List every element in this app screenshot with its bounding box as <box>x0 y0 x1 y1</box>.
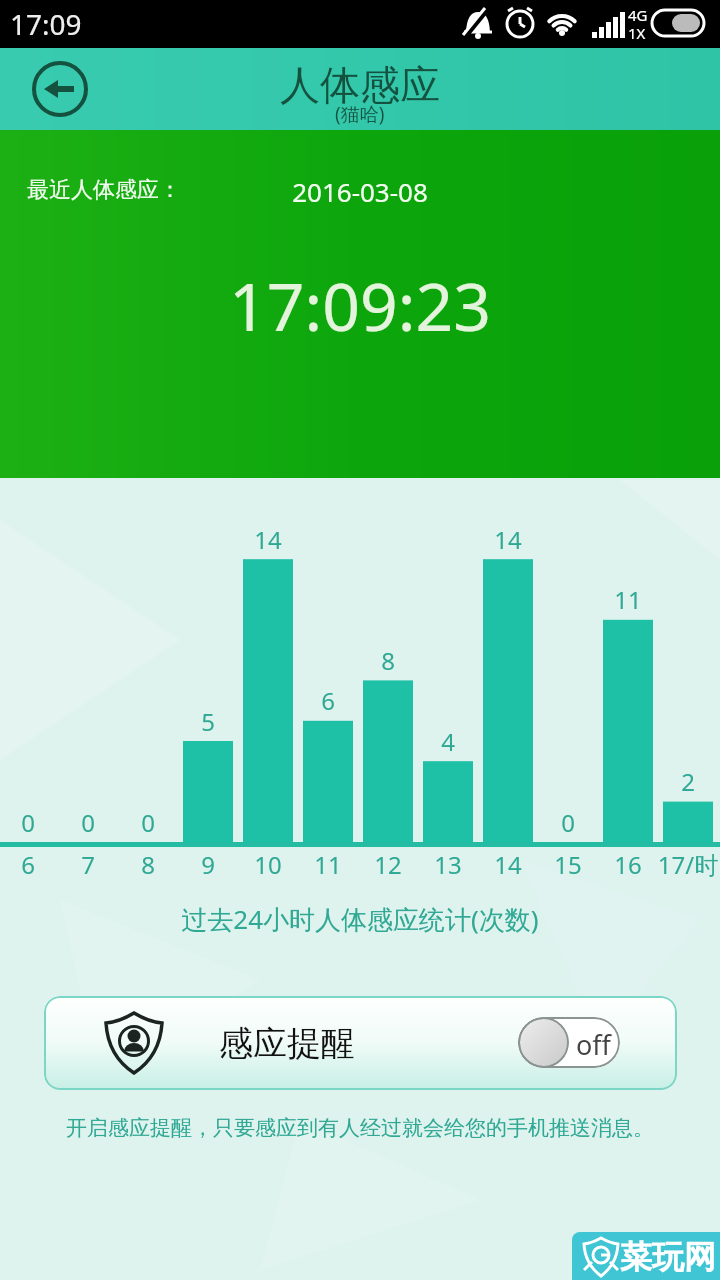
staticText: 感应提醒 <box>219 1022 355 1065</box>
staticText: 7 <box>52 848 124 881</box>
staticText: 10 <box>232 848 304 881</box>
staticText: 14 <box>238 523 298 556</box>
staticText: off <box>576 1026 611 1063</box>
staticText: 4 <box>418 725 478 758</box>
staticText: 8 <box>358 644 418 677</box>
staticText: 6 <box>298 684 358 717</box>
button[interactable]: off <box>518 1017 620 1068</box>
staticText: 14 <box>478 523 538 556</box>
staticText: 12 <box>352 848 424 881</box>
staticText: 4G <box>628 5 648 25</box>
staticText: 0 <box>538 806 598 839</box>
staticText: 6 <box>0 848 64 881</box>
staticText: 8 <box>112 848 184 881</box>
staticText: 9 <box>172 848 244 881</box>
staticText: 0 <box>118 806 178 839</box>
button[interactable]: 感应提醒 <box>44 996 677 1090</box>
staticText: 15 <box>532 848 604 881</box>
staticText: 2016-03-08 <box>0 174 720 209</box>
staticText: 17/时 <box>652 848 720 881</box>
button[interactable] <box>31 60 89 118</box>
staticText: 13 <box>412 848 484 881</box>
staticText: 17:09 <box>10 5 82 43</box>
staticText: 开启感应提醒，只要感应到有人经过就会给您的手机推送消息。 <box>0 1115 720 1141</box>
staticText: 2 <box>658 765 718 798</box>
staticText: 0 <box>58 806 118 839</box>
staticText: 5 <box>178 705 238 738</box>
staticText: 14 <box>472 848 544 881</box>
staticText: 人体感应 <box>280 60 440 110</box>
staticText: (猫哈) <box>335 101 385 127</box>
staticText: 最近人体感应： <box>27 176 181 204</box>
staticText: 过去24小时人体感应统计(次数) <box>0 901 720 937</box>
staticText: 0 <box>0 806 58 839</box>
staticText: 1X <box>628 23 646 43</box>
staticText: 16 <box>592 848 664 881</box>
staticText: 菜玩网 <box>620 1237 716 1277</box>
staticText: 17:09:23 <box>0 260 720 350</box>
staticText: 11 <box>292 848 364 881</box>
staticText: 11 <box>598 583 658 616</box>
